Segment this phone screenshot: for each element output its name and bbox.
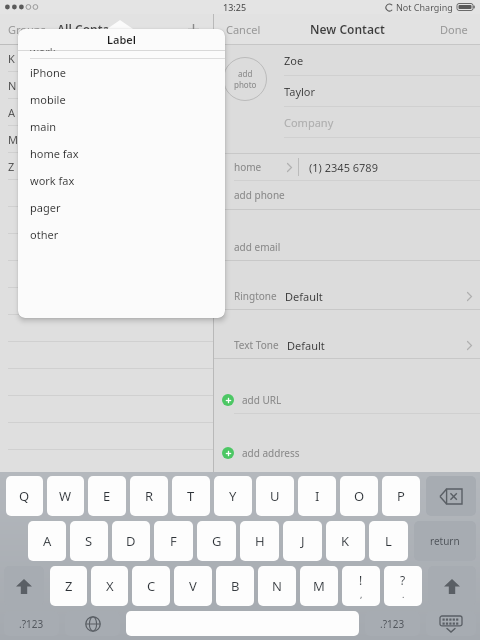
button[interactable]: Z [0,153,213,180]
staticText: , [360,588,363,600]
staticText: U [270,487,280,505]
staticText: Zoe [284,53,304,68]
staticText: home fax [30,146,79,161]
button[interactable]: Done [440,22,468,37]
button[interactable]: ! [342,566,380,606]
button[interactable]: M [300,566,338,606]
button[interactable]: N [258,566,296,606]
button[interactable]: S [70,521,108,561]
staticText: K [341,532,350,550]
button[interactable]: other [18,221,225,248]
button[interactable]: N [0,72,213,99]
button[interactable]: B [216,566,254,606]
button[interactable] [0,288,213,315]
button[interactable]: L [369,521,408,561]
staticText: Text Tone [234,338,279,352]
button[interactable]: pager [18,194,225,221]
staticText: .?123 [380,617,405,631]
button[interactable]: G [197,521,236,561]
button[interactable]: Company [276,107,480,137]
button[interactable]: Text Tone [214,332,480,358]
staticText: L [385,532,392,550]
button[interactable]: Backspace [426,476,476,516]
button[interactable] [0,450,213,477]
button[interactable]: add URL [214,387,480,413]
button[interactable]: E [88,476,126,516]
button[interactable]: K [326,521,365,561]
button[interactable]: J [283,521,322,561]
staticText: Z [8,159,15,174]
staticText: pager [30,200,61,215]
button[interactable]: Add contact [183,19,203,39]
button[interactable]: iPhone [18,59,225,86]
button[interactable]: add phone [214,181,480,209]
button[interactable]: add address [214,440,480,466]
staticText: photo [234,79,257,90]
button[interactable]: Shift [4,566,44,606]
button[interactable]: return [414,521,476,561]
button[interactable] [0,315,213,342]
button[interactable]: M [0,126,213,153]
button[interactable]: O [340,476,378,516]
button[interactable] [0,180,213,207]
staticText: . [402,588,405,600]
button[interactable]: home [214,154,480,180]
button[interactable]: .?123 [4,611,59,636]
button[interactable]: T [172,476,210,516]
button[interactable]: R [130,476,168,516]
button[interactable]: add email [214,234,480,260]
staticText: (1) 2345 6789 [309,160,378,175]
button[interactable]: home fax [18,140,225,167]
button[interactable]: D [112,521,150,561]
button[interactable]: Shift [428,566,476,606]
button[interactable] [0,234,213,261]
staticText: H [255,532,265,550]
button[interactable] [0,261,213,288]
button[interactable]: Ringtone [214,283,480,309]
button[interactable]: A [0,99,213,126]
button[interactable]: mobile [18,86,225,113]
button[interactable]: A [28,521,66,561]
button[interactable]: Zoe [276,45,480,75]
button[interactable]: W [47,476,84,516]
button[interactable]: Cancel [226,22,261,37]
staticText: work fax [30,173,75,188]
button[interactable]: U [256,476,294,516]
button[interactable]: K [0,45,213,72]
button[interactable]: H [240,521,279,561]
staticText: Q [19,487,30,505]
staticText: 13:25 [223,1,247,13]
button[interactable]: C [132,566,170,606]
button[interactable] [0,207,213,234]
button[interactable]: Taylor [276,76,480,106]
button[interactable]: add photo [223,57,267,101]
button[interactable]: Hide keyboard [426,611,476,636]
staticText: J [301,532,305,550]
button[interactable]: X [91,566,128,606]
button[interactable]: I [298,476,336,516]
button[interactable]: P [382,476,420,516]
button[interactable]: V [174,566,212,606]
button[interactable]: Y [214,476,252,516]
button[interactable] [0,477,213,504]
button[interactable]: work fax [18,167,225,194]
button[interactable]: Groups [8,22,46,37]
staticText: Ringtone [234,289,277,303]
staticText: Label [107,32,136,47]
button[interactable]: Z [50,566,87,606]
button[interactable]: main [18,113,225,140]
button[interactable]: ? [384,566,422,606]
button[interactable]: Space [126,611,359,636]
button[interactable]: Globe [65,611,120,636]
staticText: ! [359,572,363,588]
button[interactable]: F [154,521,193,561]
staticText: B [231,577,240,595]
staticText: .?123 [19,617,44,631]
button[interactable]: Q [6,476,43,516]
button[interactable]: .?123 [365,611,420,636]
